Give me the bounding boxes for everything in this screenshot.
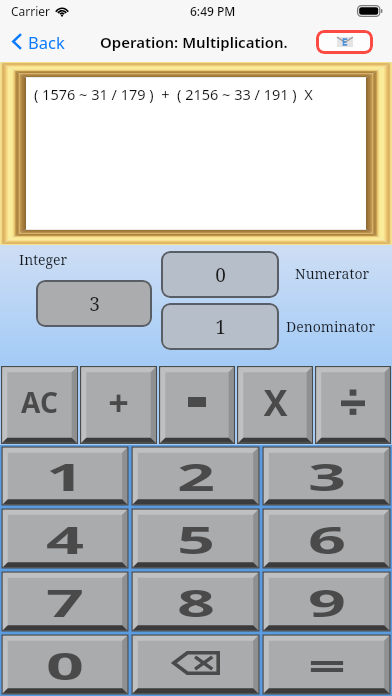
button[interactable]: 6 bbox=[261, 507, 392, 570]
staticText: 1 bbox=[215, 314, 226, 340]
button[interactable]: 0 bbox=[0, 633, 130, 696]
staticText: 7 bbox=[46, 576, 84, 628]
staticText: 2 bbox=[177, 450, 215, 502]
button[interactable] bbox=[314, 365, 392, 445]
staticText: 3 bbox=[89, 291, 100, 317]
staticText: 6 bbox=[308, 513, 346, 565]
staticText: Back bbox=[28, 31, 65, 53]
button[interactable]: 8 bbox=[130, 570, 261, 633]
button[interactable]: Email result bbox=[316, 30, 373, 54]
button[interactable]: 2 bbox=[130, 445, 261, 507]
button[interactable]: 3 bbox=[36, 280, 152, 327]
staticText: 8 bbox=[177, 576, 215, 628]
staticText: 6:49 PM bbox=[190, 3, 236, 19]
staticText: Integer bbox=[19, 250, 68, 269]
button[interactable]: 1 bbox=[0, 445, 130, 507]
button[interactable]: Subtract bbox=[158, 365, 236, 445]
button[interactable]: = bbox=[261, 633, 392, 696]
staticText: = bbox=[308, 639, 346, 691]
button[interactable]: Back bbox=[0, 21, 73, 62]
staticText: 9 bbox=[308, 576, 346, 628]
button[interactable]: 5 bbox=[130, 507, 261, 570]
button[interactable]: X bbox=[236, 365, 314, 445]
staticText: ( 1576 ~ 31 / 179 ) + ( 2156 ~ 33 / 191 … bbox=[34, 84, 313, 104]
staticText: Numerator bbox=[295, 264, 370, 283]
staticText: 3 bbox=[308, 450, 346, 502]
staticText: + bbox=[108, 378, 129, 427]
staticText: 0 bbox=[46, 639, 84, 691]
button[interactable]: 9 bbox=[261, 570, 392, 633]
button[interactable]: 1 bbox=[161, 303, 279, 350]
staticText: Operation: Multiplication. bbox=[100, 32, 288, 52]
staticText: 0 bbox=[215, 262, 226, 288]
button[interactable]: + bbox=[79, 365, 158, 445]
button[interactable]: 0 bbox=[161, 251, 279, 298]
staticText: Carrier bbox=[11, 3, 51, 19]
staticText: AC bbox=[21, 383, 58, 421]
staticText: Denominator bbox=[286, 317, 375, 336]
staticText: 5 bbox=[177, 513, 215, 565]
staticText: X bbox=[263, 378, 288, 427]
button[interactable]: 3 bbox=[261, 445, 392, 507]
staticText: 4 bbox=[46, 513, 84, 565]
button[interactable]: 7 bbox=[0, 570, 130, 633]
button[interactable]: Delete bbox=[130, 633, 261, 696]
button[interactable]: 4 bbox=[0, 507, 130, 570]
button[interactable]: AC bbox=[0, 365, 79, 445]
staticText: 1 bbox=[46, 450, 84, 502]
